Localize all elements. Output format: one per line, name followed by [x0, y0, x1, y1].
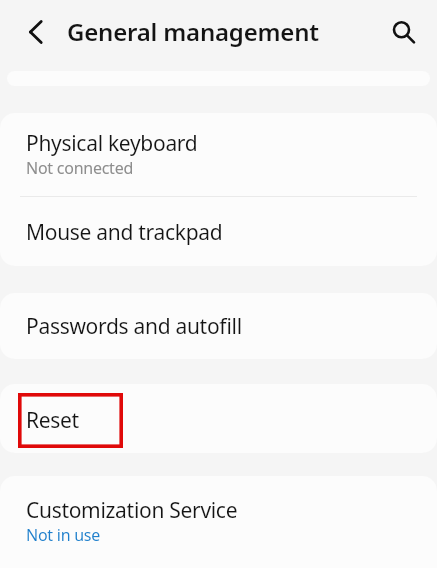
- staticText: Passwords and autofill: [26, 312, 242, 341]
- button[interactable]: Reset: [0, 384, 437, 453]
- staticText: Reset: [26, 406, 79, 435]
- staticText: Customization Service: [26, 496, 238, 525]
- button[interactable]: Mouse and trackpad: [0, 197, 437, 266]
- button[interactable]: Search: [380, 14, 424, 58]
- staticText: Not connected: [26, 157, 134, 179]
- staticText: Mouse and trackpad: [26, 218, 223, 247]
- staticText: Not in use: [26, 524, 101, 546]
- button[interactable]: Customization Service: [0, 476, 437, 568]
- button[interactable]: Physical keyboard: [0, 113, 437, 196]
- button[interactable]: Navigate up: [13, 14, 57, 58]
- button[interactable]: Passwords and autofill: [0, 293, 437, 359]
- staticText: Physical keyboard: [26, 129, 198, 158]
- staticText: General management: [67, 15, 319, 48]
